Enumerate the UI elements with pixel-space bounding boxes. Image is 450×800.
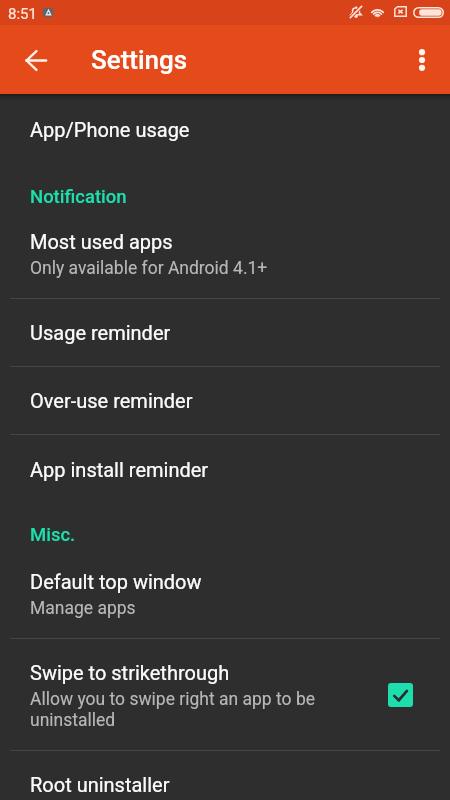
button[interactable]: Most used apps [0, 230, 450, 298]
staticText: Only available for Android 4.1+ [30, 258, 268, 279]
staticText: Settings [91, 45, 188, 75]
staticText: Misc. [30, 524, 76, 546]
button[interactable]: Back [12, 36, 60, 84]
button[interactable]: Usage reminder [0, 298, 450, 366]
staticText: 8:51 [8, 5, 37, 23]
button[interactable]: App/Phone usage [0, 94, 450, 162]
staticText: App install reminder [30, 458, 209, 481]
staticText: Allow you to swipe right an app to be un… [30, 689, 316, 731]
staticText: Manage apps [30, 598, 136, 619]
staticText: Over-use reminder [30, 389, 193, 412]
button[interactable]: Default top window [0, 570, 450, 638]
button[interactable]: Swipe to strikethrough toggle [388, 683, 413, 707]
staticText: Swipe to strikethrough [30, 661, 230, 684]
staticText: App/Phone usage [30, 118, 190, 141]
staticText: Usage reminder [30, 321, 171, 344]
staticText: Root uninstaller [30, 773, 170, 796]
button[interactable]: More options [398, 36, 446, 84]
staticText: Most used apps [30, 230, 173, 253]
button[interactable]: Over-use reminder [0, 366, 450, 434]
button[interactable]: App install reminder [0, 434, 450, 502]
staticText: Default top window [30, 570, 202, 593]
staticText: Notification [30, 186, 127, 208]
button[interactable]: Swipe to strikethrough [0, 638, 450, 750]
button[interactable]: Root uninstaller [0, 750, 450, 800]
